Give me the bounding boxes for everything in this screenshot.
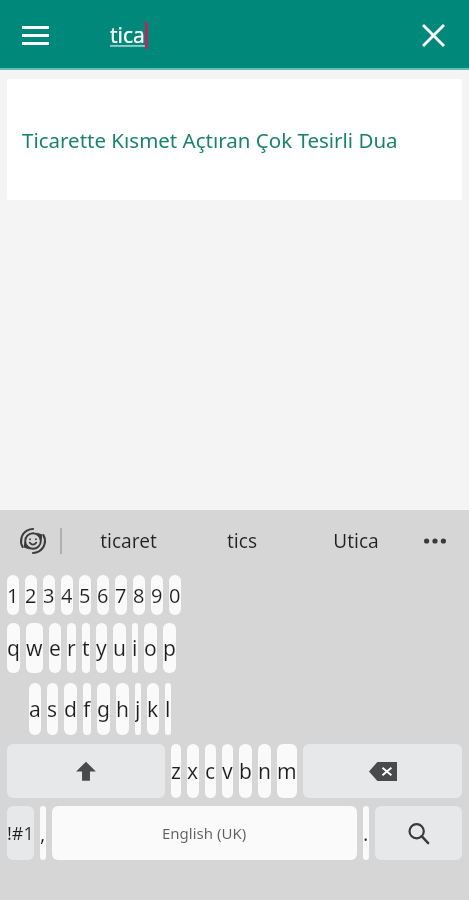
staticText: 6 <box>97 582 109 609</box>
button[interactable]: Ticarette Kısmet Açtıran Çok Tesirli Dua <box>7 79 462 200</box>
button[interactable]: r <box>67 623 76 673</box>
button[interactable]: b <box>239 744 252 798</box>
button[interactable]: English (UK) <box>52 806 357 860</box>
button[interactable]: ticaret <box>72 510 185 572</box>
button[interactable]: f <box>83 683 91 735</box>
staticText: s <box>47 695 58 724</box>
staticText: t <box>82 634 90 663</box>
staticText: i <box>132 634 138 663</box>
button[interactable]: , <box>40 806 46 860</box>
staticText: w <box>26 634 43 663</box>
button[interactable]: Clear search <box>411 13 455 57</box>
staticText: d <box>64 695 77 724</box>
button[interactable]: v <box>222 744 233 798</box>
staticText: r <box>67 634 76 663</box>
staticText: English (UK) <box>162 823 247 843</box>
staticText: n <box>258 757 271 786</box>
button[interactable]: !#1 <box>7 806 34 860</box>
staticText: l <box>165 695 171 724</box>
button[interactable]: tica <box>110 21 148 50</box>
staticText: p <box>163 634 176 663</box>
staticText: 0 <box>169 582 181 609</box>
staticText: 1 <box>7 582 19 609</box>
button[interactable]: 9 <box>151 575 163 615</box>
button[interactable]: 7 <box>115 575 127 615</box>
staticText: x <box>187 757 199 786</box>
staticText: h <box>116 695 129 724</box>
button[interactable]: u <box>113 623 126 673</box>
staticText: tica <box>110 21 145 50</box>
staticText: 3 <box>43 582 55 609</box>
staticText: c <box>205 757 216 786</box>
staticText: u <box>113 634 126 663</box>
button[interactable]: tics <box>185 510 299 572</box>
button[interactable]: k <box>147 683 159 735</box>
staticText: 9 <box>151 582 163 609</box>
button[interactable]: t <box>82 623 90 673</box>
button[interactable]: Emoji and stickers <box>13 521 53 561</box>
button[interactable]: 4 <box>61 575 73 615</box>
button[interactable]: n <box>258 744 271 798</box>
staticText: 2 <box>25 582 37 609</box>
button[interactable]: h <box>116 683 129 735</box>
button[interactable]: z <box>171 744 181 798</box>
staticText: y <box>96 634 107 663</box>
staticText: j <box>135 695 141 724</box>
staticText: . <box>363 820 369 847</box>
staticText: k <box>147 695 159 724</box>
staticText: Utica <box>333 528 379 554</box>
button[interactable]: j <box>135 683 141 735</box>
staticText: o <box>144 634 157 663</box>
staticText: Ticarette Kısmet Açtıran Çok Tesirli Dua <box>22 126 398 154</box>
staticText: tics <box>227 528 257 554</box>
staticText: 4 <box>61 582 73 609</box>
staticText: f <box>83 695 91 724</box>
button[interactable]: Open navigation menu <box>13 13 57 57</box>
button[interactable]: Utica <box>299 510 413 572</box>
button[interactable]: 8 <box>133 575 145 615</box>
button[interactable]: c <box>205 744 216 798</box>
button[interactable]: . <box>363 806 369 860</box>
button[interactable]: p <box>163 623 176 673</box>
staticText: , <box>40 820 46 847</box>
staticText: v <box>222 757 233 786</box>
button[interactable]: a <box>29 683 41 735</box>
button[interactable]: l <box>165 683 171 735</box>
staticText: b <box>239 757 252 786</box>
button[interactable]: 0 <box>169 575 181 615</box>
staticText: 8 <box>133 582 145 609</box>
button[interactable]: 5 <box>79 575 91 615</box>
staticText: z <box>171 757 181 786</box>
button[interactable]: i <box>132 623 138 673</box>
staticText: 5 <box>79 582 91 609</box>
button[interactable]: e <box>49 623 61 673</box>
button[interactable]: o <box>144 623 157 673</box>
staticText: !#1 <box>7 821 34 846</box>
staticText: q <box>7 634 20 663</box>
button[interactable]: m <box>277 744 297 798</box>
button[interactable]: d <box>64 683 77 735</box>
button[interactable]: w <box>26 623 43 673</box>
button[interactable]: 6 <box>97 575 109 615</box>
staticText: ticaret <box>100 528 157 554</box>
button[interactable]: q <box>7 623 20 673</box>
button[interactable]: s <box>47 683 58 735</box>
button[interactable]: 3 <box>43 575 55 615</box>
staticText: g <box>97 695 110 724</box>
staticText: a <box>29 695 41 724</box>
button[interactable]: More suggestions <box>417 523 453 559</box>
button[interactable]: Shift <box>7 744 165 798</box>
staticText: m <box>277 757 297 786</box>
button[interactable]: g <box>97 683 110 735</box>
button[interactable]: Search <box>375 806 462 860</box>
staticText: e <box>49 634 61 663</box>
button[interactable]: y <box>96 623 107 673</box>
staticText: 7 <box>115 582 127 609</box>
button[interactable]: x <box>187 744 199 798</box>
button[interactable]: 2 <box>25 575 37 615</box>
button[interactable]: Backspace <box>303 744 462 798</box>
button[interactable]: 1 <box>7 575 19 615</box>
